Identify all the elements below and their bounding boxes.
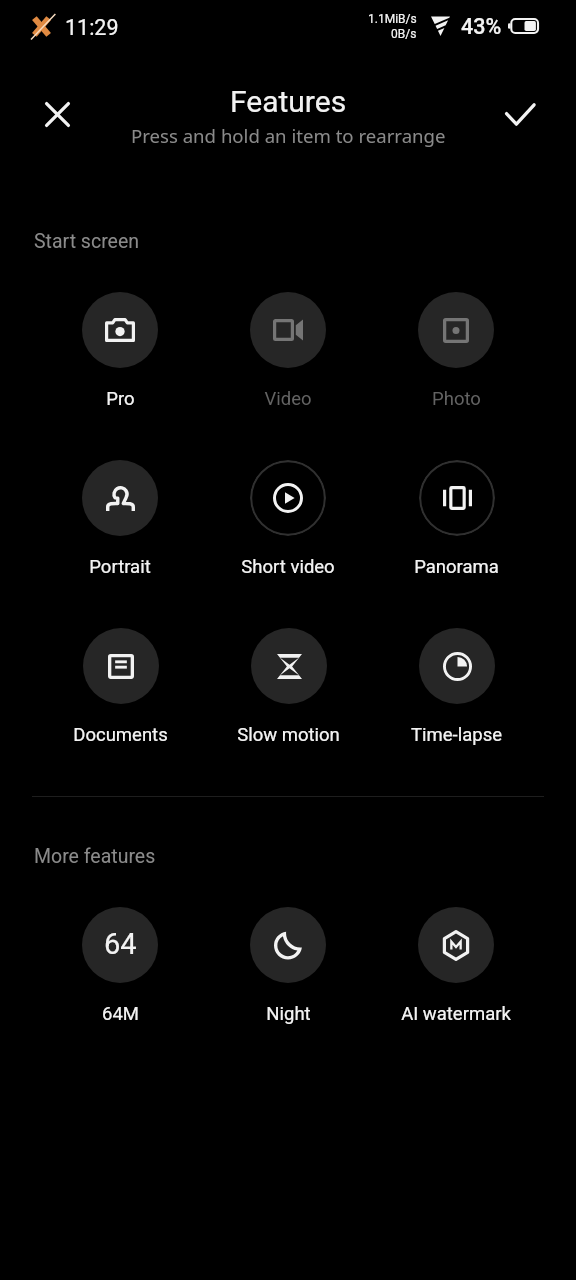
staticText: Portrait [89,556,151,578]
staticText: More features [34,845,156,868]
staticText: Night [266,1003,311,1025]
button[interactable]: Short video [204,460,372,578]
staticText: Photo [432,388,481,410]
button[interactable]: Confirm [496,91,543,138]
button[interactable]: Slow motion [204,628,372,746]
button[interactable]: Time-lapse [372,628,540,746]
staticText: Start screen [34,230,140,253]
staticText: Panorama [414,556,499,578]
staticText: 43% [461,14,502,39]
staticText: Short video [241,556,335,578]
button[interactable]: Photo [372,292,540,410]
button[interactable]: Portrait [36,460,204,578]
button[interactable]: Close [34,91,81,138]
staticText: 1.1MiB/s [368,12,417,26]
button[interactable]: AI watermark [372,907,540,1025]
staticText: Documents [73,724,168,746]
staticText: AI watermark [401,1003,511,1025]
staticText: 64M [102,1003,139,1025]
staticText: Time-lapse [411,724,502,746]
staticText: 11:29 [65,15,119,40]
button[interactable]: 64 [36,907,204,1025]
staticText: 64 [104,927,137,961]
button[interactable]: Night [204,907,372,1025]
staticText: Slow motion [237,724,340,746]
button[interactable]: Video [204,292,372,410]
button[interactable]: Panorama [372,460,540,578]
staticText: Press and hold an item to rearrange [131,123,446,148]
staticText: 0B/s [391,27,417,41]
button[interactable]: Documents [36,628,204,746]
staticText: Pro [106,388,135,410]
staticText: Features [230,84,347,119]
button[interactable]: Pro [36,292,204,410]
staticText: Video [264,388,312,410]
other: Wi-Fi [431,16,450,36]
